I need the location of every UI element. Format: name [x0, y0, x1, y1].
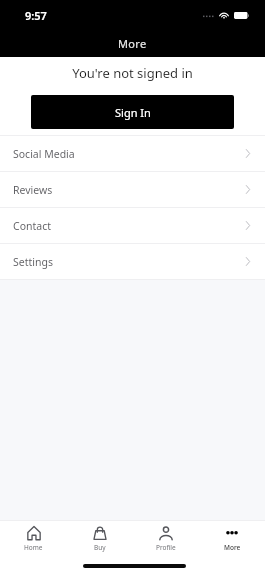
staticText: Home	[24, 543, 43, 552]
button[interactable]: Sign In	[31, 95, 234, 129]
button[interactable]: Settings	[0, 244, 265, 279]
staticText: Sign In	[115, 105, 151, 120]
staticText: You're not signed in	[0, 64, 265, 82]
button[interactable]: Buy	[67, 521, 133, 554]
button[interactable]: Contact	[0, 208, 265, 243]
button[interactable]: Home	[0, 521, 67, 554]
staticText: More	[118, 36, 147, 51]
staticText: 9:57	[25, 8, 47, 23]
button[interactable]: More	[199, 521, 265, 554]
staticText: Profile	[156, 543, 176, 552]
button[interactable]: Social Media	[0, 136, 265, 171]
staticText: Buy	[94, 543, 106, 552]
button[interactable]: Profile	[133, 521, 199, 554]
staticText: Reviews	[13, 183, 53, 197]
button[interactable]: Reviews	[0, 172, 265, 207]
staticText: Contact	[13, 219, 51, 233]
staticText: Social Media	[13, 147, 75, 161]
staticText: Settings	[13, 255, 53, 269]
staticText: More	[224, 543, 241, 552]
